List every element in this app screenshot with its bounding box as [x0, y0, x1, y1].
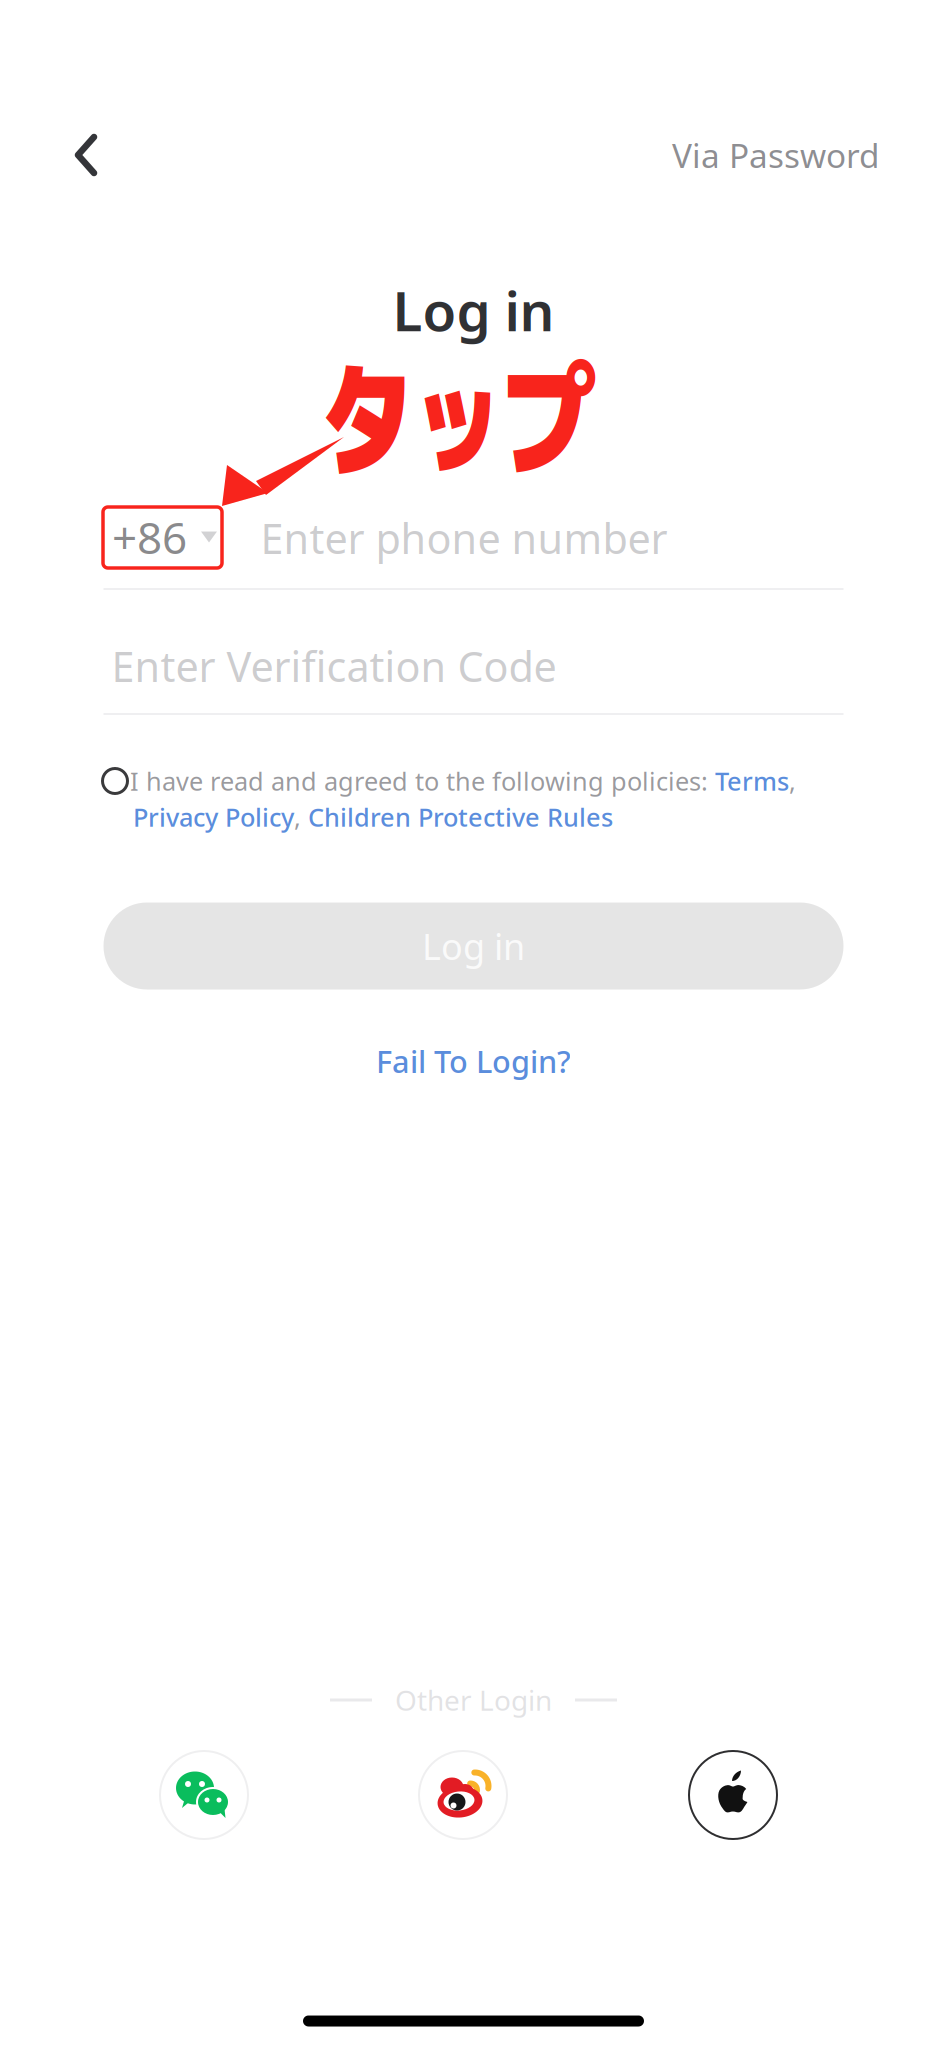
- button[interactable]: Log in with Weibo: [413, 1745, 513, 1845]
- staticText: Enter phone number: [260, 511, 667, 565]
- staticText: Privacy Policy: [133, 800, 294, 834]
- staticText: Enter Verification Code: [111, 639, 556, 693]
- staticText: Via Password: [672, 133, 880, 177]
- staticText: ,: [294, 800, 308, 834]
- staticText: Log in: [392, 274, 554, 346]
- staticText: Log in: [422, 922, 525, 970]
- staticText: Children Protective Rules: [308, 800, 613, 834]
- staticText: Other Login: [395, 1681, 552, 1719]
- staticText: タップ: [320, 356, 596, 490]
- staticText: タップ: [316, 355, 592, 489]
- staticText: Terms: [715, 764, 789, 798]
- staticText: タップ: [320, 346, 596, 480]
- staticText: Fail To Login?: [376, 1041, 571, 1081]
- staticText: ,: [789, 764, 796, 798]
- button[interactable]: Log in with Apple: [683, 1745, 783, 1845]
- button[interactable]: Fail To Login?: [323, 1033, 623, 1089]
- button[interactable]: Agree to the policies: [93, 759, 137, 803]
- button[interactable]: Log in with WeChat: [154, 1745, 254, 1845]
- staticText: タップ: [320, 351, 596, 485]
- button[interactable]: Children Protective Rules: [308, 800, 613, 834]
- button[interactable]: Log in: [103, 902, 843, 989]
- button[interactable]: Via Password: [661, 118, 891, 192]
- button[interactable]: Terms: [715, 764, 789, 798]
- staticText: I have read and agreed to the following …: [130, 764, 715, 798]
- staticText: タップ: [316, 347, 592, 481]
- button[interactable]: Privacy Policy: [133, 800, 294, 834]
- button[interactable]: Back: [43, 112, 129, 198]
- staticText: タップ: [324, 347, 600, 481]
- staticText: タップ: [315, 351, 591, 485]
- staticText: +86: [112, 508, 187, 566]
- staticText: タップ: [325, 351, 601, 485]
- staticText: タップ: [324, 355, 600, 489]
- button[interactable]: Country code, +86: [103, 507, 222, 568]
